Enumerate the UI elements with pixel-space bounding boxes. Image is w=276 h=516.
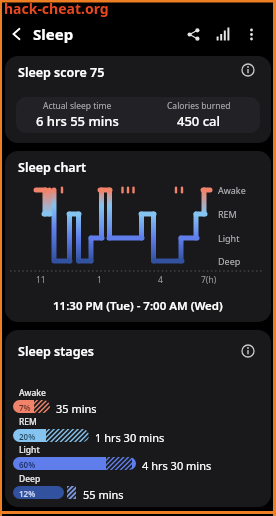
staticText: 6 hrs 55 mins [36, 112, 119, 130]
staticText: 450 cal [177, 112, 221, 130]
staticText: Awake [218, 184, 246, 196]
staticText: 11 [36, 274, 46, 286]
staticText: Actual sleep time [43, 100, 112, 112]
staticText: REM [19, 416, 37, 428]
staticText: Deep [19, 473, 41, 485]
staticText: hack-cheat.org [4, 0, 109, 18]
button[interactable] [178, 19, 208, 49]
staticText: 12% [19, 488, 36, 499]
staticText: Sleep stages [18, 343, 94, 360]
button[interactable]: Sleep chart [5, 151, 271, 322]
staticText: 35 mins [56, 401, 97, 416]
staticText: Calories burned [167, 100, 231, 112]
staticText: 4 [158, 274, 163, 286]
button[interactable] [0, 17, 33, 50]
button[interactable]: Sleep score 75 [5, 56, 271, 143]
staticText: 1 hrs 30 mins [95, 430, 165, 445]
button[interactable]: Actual sleep time [16, 97, 260, 133]
button[interactable]: 7% [13, 400, 50, 413]
staticText: Light [218, 232, 240, 244]
staticText: Deep [218, 255, 241, 267]
button[interactable]: 12% [13, 486, 77, 499]
button[interactable] [241, 344, 255, 358]
button[interactable] [238, 21, 264, 47]
staticText: Light [19, 444, 40, 456]
button[interactable]: 20% [13, 429, 89, 442]
staticText: Awake [19, 387, 46, 399]
staticText: Sleep [33, 24, 74, 44]
staticText: 4 hrs 30 mins [142, 458, 212, 473]
button[interactable]: 60% [13, 457, 136, 470]
button[interactable] [208, 19, 238, 49]
staticText: 11:30 PM (Tue) - 7:00 AM (Wed) [53, 298, 223, 314]
staticText: 20% [19, 431, 36, 442]
staticText: Sleep score 75 [18, 64, 105, 81]
staticText: 7% [19, 402, 31, 413]
button[interactable] [241, 63, 255, 77]
staticText: 1 [97, 274, 102, 286]
staticText: 55 mins [83, 487, 124, 502]
staticText: Sleep chart [18, 159, 87, 176]
staticText: 7(h) [201, 274, 217, 286]
button[interactable]: Sleep stages [5, 330, 271, 507]
staticText: 60% [19, 459, 36, 470]
staticText: REM [218, 208, 237, 220]
